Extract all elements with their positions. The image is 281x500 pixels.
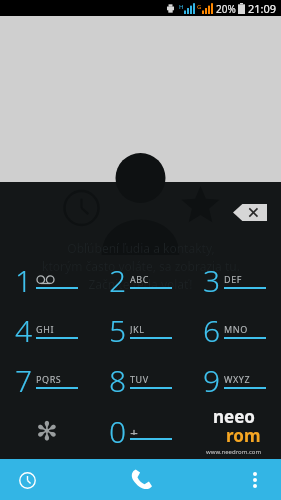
staticText: PQRS <box>36 373 62 384</box>
staticText: H <box>179 3 184 11</box>
staticText: rom <box>226 424 261 447</box>
button[interactable]: Key 3 <box>187 255 281 305</box>
staticText: 20% <box>216 2 236 16</box>
staticText: TUV <box>130 373 149 384</box>
staticText: 3 <box>203 260 221 301</box>
button[interactable]: Key 4 <box>0 305 93 355</box>
button[interactable]: Key 8 <box>93 355 187 405</box>
button[interactable]: Key # <box>187 405 281 457</box>
staticText: DEF <box>224 273 243 284</box>
staticText: 6 <box>203 310 221 351</box>
button[interactable]: Key 5 <box>93 305 187 355</box>
staticText: neeo <box>213 405 255 428</box>
staticText: JKL <box>130 323 145 334</box>
staticText: MNO <box>224 323 248 334</box>
staticText: + <box>130 424 139 435</box>
staticText: Začnite teda volať! <box>88 276 193 292</box>
button[interactable]: Key 9 <box>187 355 281 405</box>
staticText: 5 <box>109 310 127 351</box>
button[interactable]: Key 7 <box>0 355 93 405</box>
button[interactable]: Recent calls <box>10 463 44 497</box>
button[interactable]: Key 0 <box>93 405 187 457</box>
staticText: ✻ <box>36 416 58 446</box>
staticText: 9 <box>203 360 221 401</box>
button[interactable]: Call <box>121 460 161 500</box>
staticText: 8 <box>109 360 127 401</box>
staticText: www.needrom.com <box>206 448 262 454</box>
button[interactable]: Key 2 <box>93 255 187 305</box>
button[interactable]: More options <box>239 464 271 496</box>
staticText: 4 <box>15 310 33 351</box>
button[interactable]: Delete <box>233 204 267 221</box>
button[interactable]: Key ✻ <box>0 405 93 457</box>
staticText: 7 <box>15 360 33 401</box>
staticText: WXYZ <box>224 373 251 384</box>
staticText: 0 <box>109 411 127 452</box>
staticText: 1 <box>15 260 33 301</box>
staticText: ktorým často voláte, sa zobrazia tu. <box>42 258 240 274</box>
staticText: Obľúbení ľudia a kontakty, <box>67 240 215 256</box>
staticText: G <box>197 3 202 11</box>
staticText: ABC <box>130 273 150 284</box>
staticText: 2 <box>109 260 127 301</box>
button[interactable]: Key 1 <box>0 255 93 305</box>
button[interactable]: Key 6 <box>187 305 281 355</box>
staticText: 21:09 <box>248 1 277 16</box>
staticText: GHI <box>36 323 55 334</box>
